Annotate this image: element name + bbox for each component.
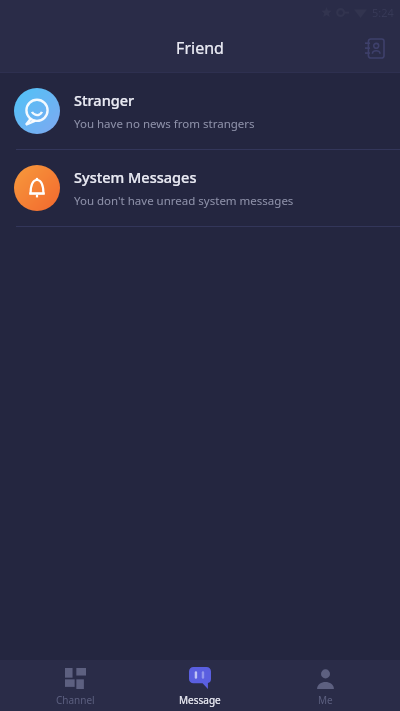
staticText: 5:24 bbox=[372, 5, 394, 20]
staticText: Friend bbox=[176, 37, 224, 59]
button[interactable]: Channel bbox=[25, 660, 125, 711]
button[interactable]: Me bbox=[275, 660, 375, 711]
staticText: Me bbox=[318, 693, 333, 707]
staticText: Stranger bbox=[74, 90, 135, 110]
button[interactable]: Message bbox=[150, 660, 250, 711]
button[interactable]: Stranger bbox=[0, 73, 400, 149]
staticText: Message bbox=[179, 693, 221, 707]
button[interactable]: Contacts bbox=[358, 32, 390, 64]
button[interactable]: System Messages bbox=[0, 150, 400, 226]
staticText: System Messages bbox=[74, 167, 197, 187]
staticText: You have no news from strangers bbox=[74, 116, 255, 132]
staticText: You don't have unread system messages bbox=[74, 193, 294, 209]
staticText: Channel bbox=[56, 693, 95, 707]
